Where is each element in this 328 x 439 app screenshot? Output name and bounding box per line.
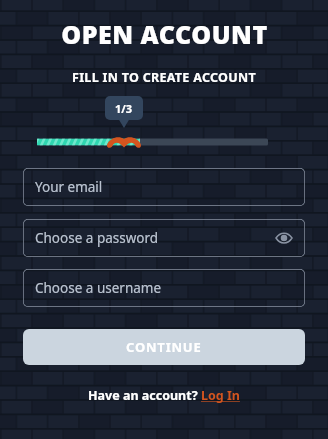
button[interactable]: Choose a password <box>23 219 305 257</box>
button[interactable]: Your email <box>23 168 305 206</box>
staticText: Have an account? <box>88 387 201 404</box>
staticText: OPEN ACCOUNT <box>61 17 268 51</box>
staticText: Choose a password <box>35 229 159 247</box>
staticText: CONTINUE <box>126 338 202 356</box>
staticText: Choose a username <box>35 279 162 297</box>
button[interactable]: Show password <box>271 225 297 251</box>
button[interactable]: CONTINUE <box>23 329 305 365</box>
button[interactable]: Choose a username <box>23 269 305 307</box>
button[interactable]: Log In <box>201 387 240 404</box>
staticText: FILL IN TO CREATE ACCOUNT <box>72 69 256 86</box>
staticText: Log In <box>201 387 240 404</box>
staticText: Your email <box>35 178 103 196</box>
staticText: 1/3 <box>115 101 133 116</box>
